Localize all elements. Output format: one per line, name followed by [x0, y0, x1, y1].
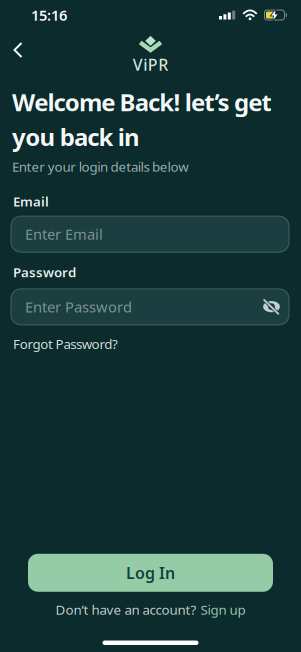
staticText: Enter your login details below [12, 158, 188, 175]
staticText: Forgot Password? [13, 335, 118, 353]
staticText: Enter Email [25, 224, 103, 244]
staticText: Don’t have an account? [55, 601, 196, 618]
staticText: you back in [12, 121, 140, 153]
staticText: Enter Password [25, 297, 132, 317]
staticText: Email [13, 192, 49, 210]
staticText: Welcome Back! let’s get [12, 86, 271, 118]
staticText: Sign up [200, 601, 245, 618]
staticText: Password [13, 263, 76, 281]
staticText: ViPR [133, 54, 168, 75]
staticText: Log In [126, 562, 175, 583]
staticText: 15:16 [31, 5, 67, 25]
